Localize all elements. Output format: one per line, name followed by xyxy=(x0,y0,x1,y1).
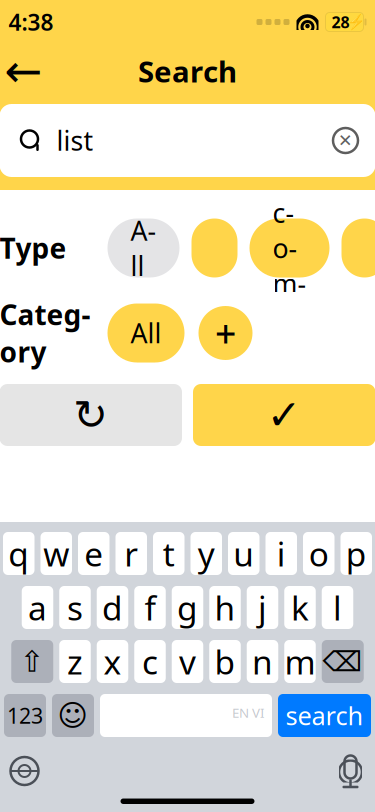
staticText: list xyxy=(56,123,93,158)
button[interactable]: a xyxy=(22,586,53,629)
staticText: 28 xyxy=(331,11,349,33)
staticText: w xyxy=(43,531,69,576)
button[interactable]: ⇧ xyxy=(11,640,53,683)
button[interactable]: b xyxy=(209,640,241,683)
button[interactable]: n xyxy=(247,640,278,683)
button[interactable]: Add category xyxy=(198,306,252,360)
button[interactable]: Reset filters xyxy=(0,384,182,446)
button[interactable]: All xyxy=(107,218,179,277)
staticText: All xyxy=(130,315,161,351)
staticText: ⇧ xyxy=(20,645,45,678)
staticText: ↻ xyxy=(73,391,108,438)
button[interactable]: space xyxy=(100,694,272,737)
button[interactable]: g xyxy=(172,586,203,629)
button[interactable]: Income xyxy=(249,218,329,277)
button[interactable]: r xyxy=(115,532,147,575)
button[interactable]: 123 xyxy=(4,694,46,737)
button[interactable]: h xyxy=(209,586,241,629)
button[interactable]: Expense xyxy=(191,218,237,277)
staticText: search xyxy=(285,699,363,732)
button[interactable]: Apply filters xyxy=(193,384,375,446)
button[interactable]: search xyxy=(278,694,371,737)
staticText: k xyxy=(291,585,309,630)
staticText: All xyxy=(130,213,156,283)
staticText: ⚡ xyxy=(346,14,364,30)
button[interactable]: Next keyboard xyxy=(0,749,51,793)
staticText: e xyxy=(84,531,103,576)
staticText: h xyxy=(214,585,235,630)
button[interactable]: f xyxy=(134,586,166,629)
staticText: q xyxy=(8,531,29,576)
staticText: Income xyxy=(272,159,306,337)
staticText: y xyxy=(198,531,215,576)
staticText: ← xyxy=(4,45,42,97)
button[interactable]: w xyxy=(40,532,72,575)
staticText: s xyxy=(67,585,83,630)
staticText: c xyxy=(142,639,158,684)
staticText: r xyxy=(124,531,138,576)
button[interactable]: i xyxy=(265,532,297,575)
button[interactable]: ⌫ xyxy=(322,640,364,683)
staticText: d xyxy=(102,585,123,630)
button[interactable]: o xyxy=(303,532,334,575)
button[interactable]: e xyxy=(78,532,109,575)
button[interactable]: u xyxy=(228,532,259,575)
button[interactable]: Transfer xyxy=(341,218,375,277)
button[interactable]: x xyxy=(97,640,128,683)
staticText: ⌫ xyxy=(323,646,363,677)
button[interactable]: All xyxy=(107,303,184,362)
staticText: ☺ xyxy=(57,699,88,732)
staticText: m xyxy=(284,639,315,684)
staticText: Type xyxy=(0,229,66,267)
staticText: j xyxy=(258,585,267,630)
staticText: ✓ xyxy=(267,391,302,438)
button[interactable]: Dictation xyxy=(323,749,375,793)
staticText: o xyxy=(309,531,329,576)
staticText: b xyxy=(214,639,235,684)
staticText: f xyxy=(144,585,155,630)
button[interactable]: p xyxy=(340,532,372,575)
button[interactable]: ☺ xyxy=(52,694,94,737)
button[interactable]: Back xyxy=(0,49,47,93)
button[interactable]: q xyxy=(3,532,34,575)
staticText: Category xyxy=(0,296,90,370)
staticText: l xyxy=(333,585,342,630)
staticText: x xyxy=(103,639,121,684)
button[interactable]: s xyxy=(59,586,91,629)
staticText: ✕ xyxy=(338,131,353,150)
button[interactable]: y xyxy=(190,532,222,575)
button[interactable]: t xyxy=(153,532,184,575)
button[interactable]: m xyxy=(284,640,316,683)
staticText: g xyxy=(177,585,198,630)
staticText: + xyxy=(215,308,236,358)
staticText: u xyxy=(233,531,254,576)
button[interactable]: z xyxy=(59,640,91,683)
staticText: 4:38 xyxy=(8,7,53,37)
staticText: t xyxy=(163,531,175,576)
staticText: EN VI xyxy=(232,704,265,721)
staticText: a xyxy=(28,585,47,630)
staticText: v xyxy=(179,639,196,684)
button[interactable]: k xyxy=(284,586,316,629)
staticText: i xyxy=(277,531,286,576)
button[interactable]: d xyxy=(97,586,128,629)
button[interactable]: j xyxy=(247,586,278,629)
staticText: z xyxy=(67,639,83,684)
staticText: n xyxy=(252,639,273,684)
staticText: 123 xyxy=(7,701,43,730)
button[interactable]: c xyxy=(134,640,166,683)
button[interactable]: Clear search xyxy=(323,118,367,162)
button[interactable]: v xyxy=(172,640,203,683)
button[interactable]: l xyxy=(322,586,353,629)
staticText: p xyxy=(346,531,367,576)
staticText: Search xyxy=(138,51,237,90)
